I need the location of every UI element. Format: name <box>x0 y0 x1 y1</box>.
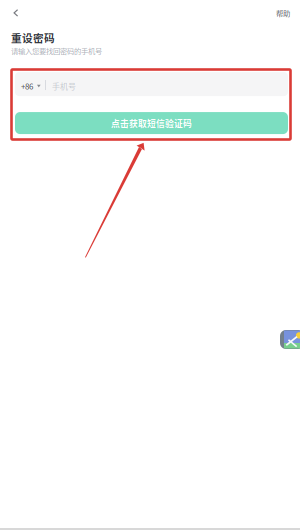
button[interactable]: Back <box>5 0 27 26</box>
staticText: 手机号 <box>52 80 76 92</box>
staticText: +86 <box>21 80 33 92</box>
staticText: 点击获取短信验证码 <box>111 117 192 129</box>
staticText: 请输入您要找回密码的手机号 <box>11 45 102 56</box>
button[interactable]: 帮助 <box>276 1 290 25</box>
staticText: 帮助 <box>276 8 290 18</box>
button[interactable]: 点击获取短信验证码 <box>15 112 288 134</box>
staticText: 重设密码 <box>11 30 55 45</box>
